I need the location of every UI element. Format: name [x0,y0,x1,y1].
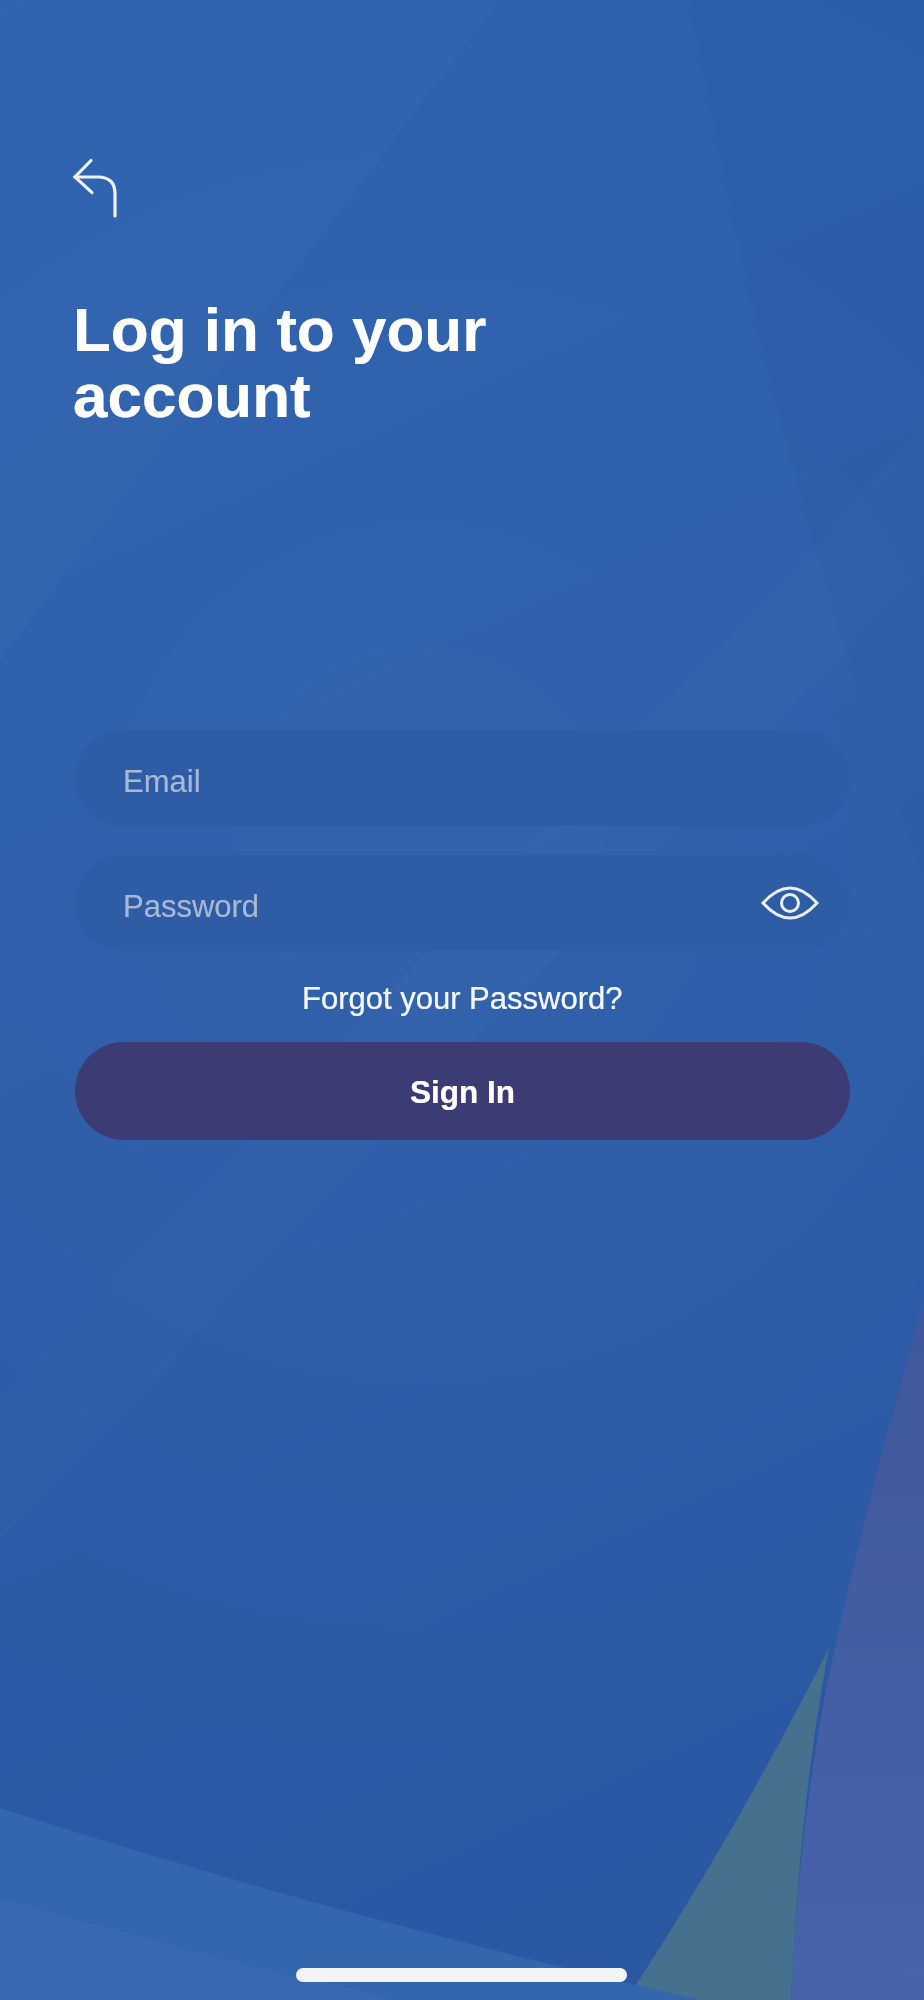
button[interactable]: Email [75,730,850,826]
button[interactable]: Password [75,855,850,951]
button[interactable]: Forgot your Password? [302,981,623,1016]
button[interactable]: Sign In [75,1042,850,1140]
staticText: Password [123,889,260,924]
staticText: Log in to your account [73,295,487,430]
button[interactable] [55,140,135,226]
staticText: Email [123,764,201,799]
staticText: Sign In [410,1074,515,1109]
